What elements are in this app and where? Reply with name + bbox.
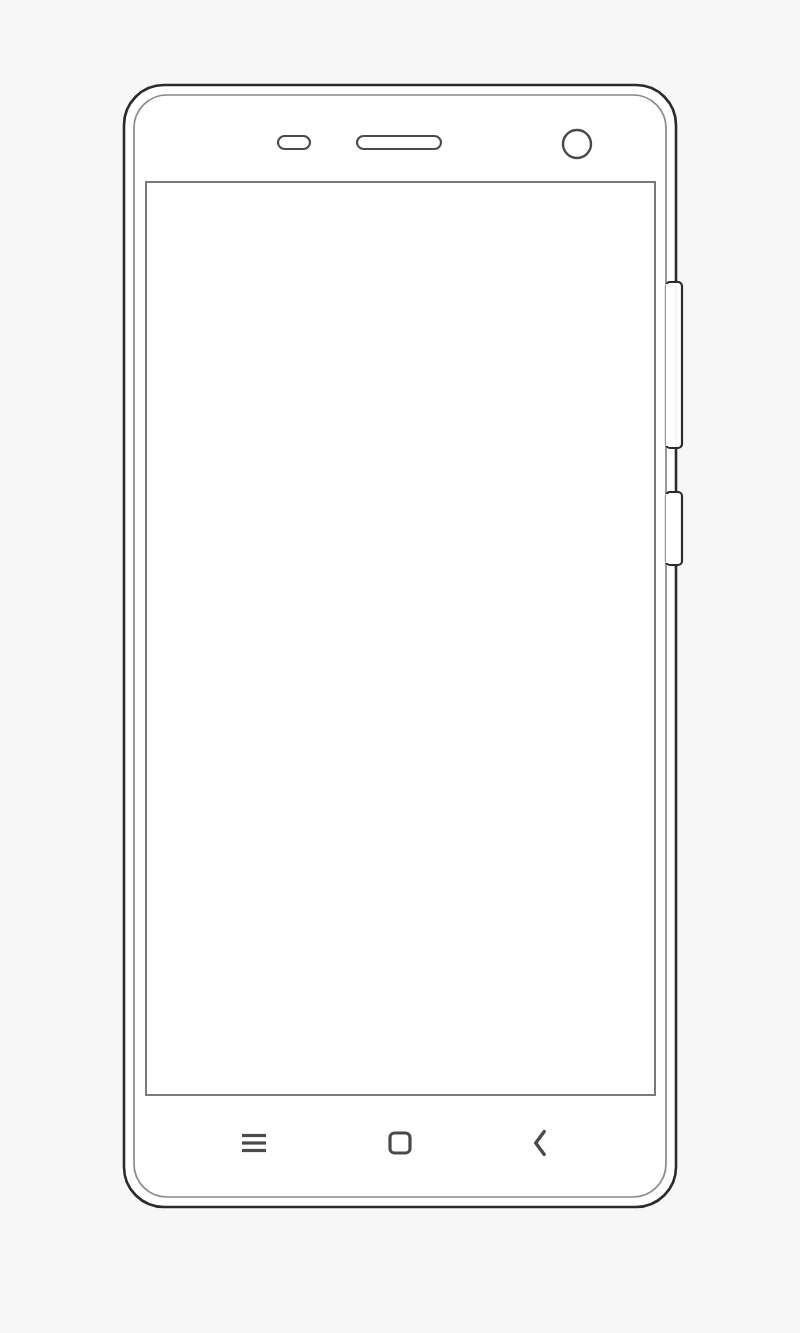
button[interactable]: Phone screen — [146, 182, 655, 1095]
button[interactable]: Home — [360, 1108, 440, 1178]
button[interactable]: Menu — [214, 1108, 294, 1178]
button[interactable]: Back — [500, 1108, 580, 1178]
